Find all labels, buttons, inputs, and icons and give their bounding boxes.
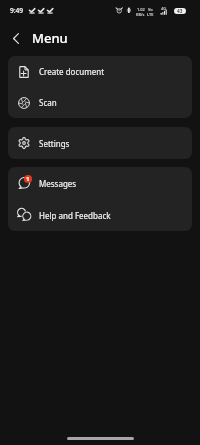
staticText: KB/s [136, 12, 145, 17]
staticText: Create document [39, 66, 105, 77]
staticText: 1.02 [137, 7, 145, 12]
staticText: Settings [39, 138, 70, 149]
staticText: Help and Feedback [39, 210, 111, 221]
staticText: 9:49 [10, 6, 24, 15]
button[interactable]: Scan [8, 87, 192, 118]
staticText: Menu [32, 29, 68, 47]
button[interactable]: Create document [8, 56, 192, 87]
button[interactable]: Back [4, 26, 28, 50]
button[interactable]: Help and Feedback [8, 199, 192, 231]
staticText: 43 [177, 8, 183, 14]
staticText: Vo [148, 7, 153, 12]
staticText: Messages [39, 178, 77, 189]
button[interactable]: 1 [8, 167, 192, 199]
staticText: LTE [147, 12, 154, 17]
staticText: 4G [161, 6, 167, 11]
button[interactable]: Settings [8, 127, 192, 159]
staticText: 1 [26, 175, 30, 183]
staticText: Scan [39, 97, 57, 108]
